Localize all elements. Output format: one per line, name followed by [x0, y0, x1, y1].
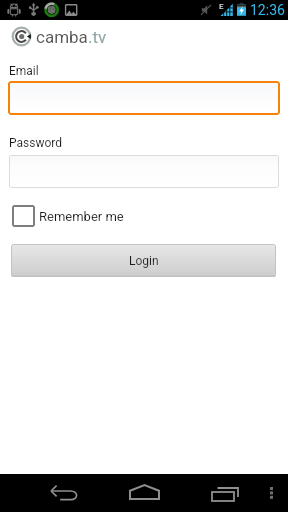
- button[interactable]: Back: [22, 474, 106, 512]
- staticText: Password: [9, 136, 63, 150]
- button[interactable]: Remember me: [12, 205, 124, 227]
- button[interactable]: [8, 81, 280, 115]
- button[interactable]: More options: [256, 474, 288, 512]
- staticText: .tv: [88, 27, 107, 47]
- staticText: Remember me: [39, 209, 124, 224]
- button[interactable]: Recent apps: [187, 474, 259, 512]
- staticText: Login: [129, 254, 159, 268]
- button[interactable]: Login: [11, 244, 276, 277]
- staticText: Email: [9, 64, 39, 78]
- staticText: camba: [36, 27, 88, 47]
- button[interactable]: [9, 155, 279, 188]
- button[interactable]: Home: [106, 474, 184, 512]
- staticText: 12:36: [250, 2, 285, 18]
- staticText: 74: [48, 4, 57, 13]
- staticText: E: [219, 2, 224, 11]
- button[interactable]: camba: [0, 20, 288, 56]
